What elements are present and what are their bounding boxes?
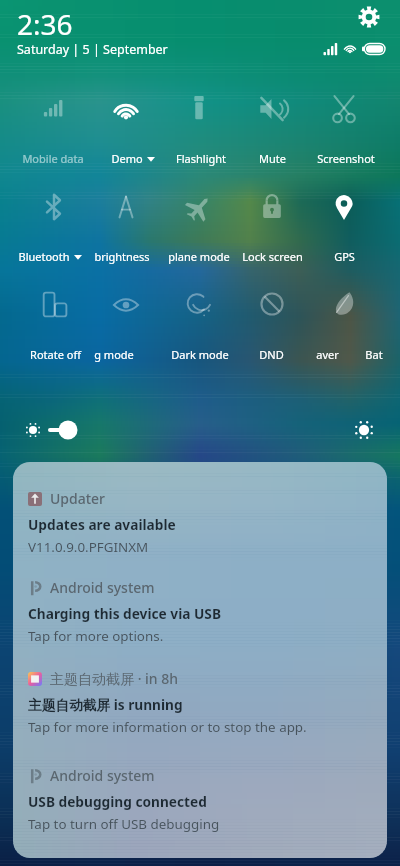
staticText: Tap for more options. [28, 627, 164, 645]
staticText: Charging this device via USB [28, 604, 221, 623]
staticText: plane mode [168, 249, 230, 264]
button[interactable]: GPS [308, 194, 380, 266]
button[interactable]: Flashlight [163, 95, 235, 167]
staticText: Tap for more information or to stop the … [28, 718, 307, 736]
button[interactable]: Bluetooth [18, 194, 90, 266]
staticText: g mode [94, 347, 134, 362]
button[interactable]: Brightness [16, 412, 384, 448]
staticText: Dark mode [171, 347, 229, 362]
staticText: brightness [94, 249, 150, 264]
button[interactable]: Airplane mode [163, 194, 235, 266]
staticText: Mobile data [22, 151, 84, 166]
staticText: Rotate off [30, 347, 81, 362]
button[interactable]: Settings [356, 4, 382, 30]
button[interactable]: Android system [13, 766, 387, 854]
button[interactable]: Lock screen [236, 194, 308, 266]
staticText: Updater [50, 489, 106, 508]
staticText: Lock screen [242, 249, 303, 264]
staticText: Android system [50, 766, 155, 785]
staticText: Updates are available [28, 515, 176, 534]
staticText: Flashlight [176, 151, 226, 166]
button[interactable]: Auto brightness [90, 194, 162, 266]
staticText: Android system [50, 578, 155, 597]
staticText: aver [316, 347, 339, 362]
button[interactable]: Dark mode [163, 291, 235, 363]
button[interactable]: Wi-Fi [90, 95, 162, 167]
staticText: USB debugging connected [28, 792, 207, 811]
button[interactable]: Updater [13, 489, 387, 577]
button[interactable]: Reading mode [90, 291, 162, 363]
staticText: Bat [365, 347, 383, 362]
staticText: 主题自动截屏 · in 8h [50, 669, 179, 688]
button[interactable]: Do not disturb [236, 291, 308, 363]
staticText: Screenshot [317, 151, 375, 166]
staticText: Demo [111, 151, 143, 166]
button[interactable]: Screenshot [308, 95, 380, 167]
staticText: Mute [259, 151, 286, 166]
staticText: Bluetooth [18, 249, 70, 264]
button[interactable]: Battery saver [308, 291, 380, 363]
staticText: Saturday | 5 | September [17, 41, 168, 58]
staticText: 主题自动截屏 is running [28, 695, 183, 714]
button[interactable]: Rotate off [18, 291, 90, 363]
staticText: DND [259, 347, 284, 362]
button[interactable]: Android system [13, 578, 387, 666]
button[interactable]: Mobile data [18, 95, 90, 167]
staticText: GPS [334, 249, 355, 264]
button[interactable]: Mute [236, 95, 308, 167]
button[interactable]: 主题自动截屏 · in 8h [13, 669, 387, 757]
staticText: Tap to turn off USB debugging [28, 815, 220, 833]
staticText: 2:36 [17, 5, 73, 43]
staticText: V11.0.9.0.PFGINXM [28, 538, 149, 556]
